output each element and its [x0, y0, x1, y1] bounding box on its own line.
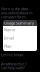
- staticText: can help with?: [1, 65, 25, 70]
- staticText: Here is the data: [1, 6, 28, 11]
- staticText: compact form.: [1, 14, 27, 19]
- staticText: Let me know.: [1, 52, 24, 57]
- staticText: Anything else I: [1, 61, 26, 66]
- staticText: Name: [4, 27, 15, 32]
- staticText: Plan: [4, 44, 11, 49]
- staticText: Email: [4, 35, 14, 41]
- staticText: Usage Summary: [4, 20, 34, 26]
- staticText: you asked about in: [1, 10, 32, 15]
